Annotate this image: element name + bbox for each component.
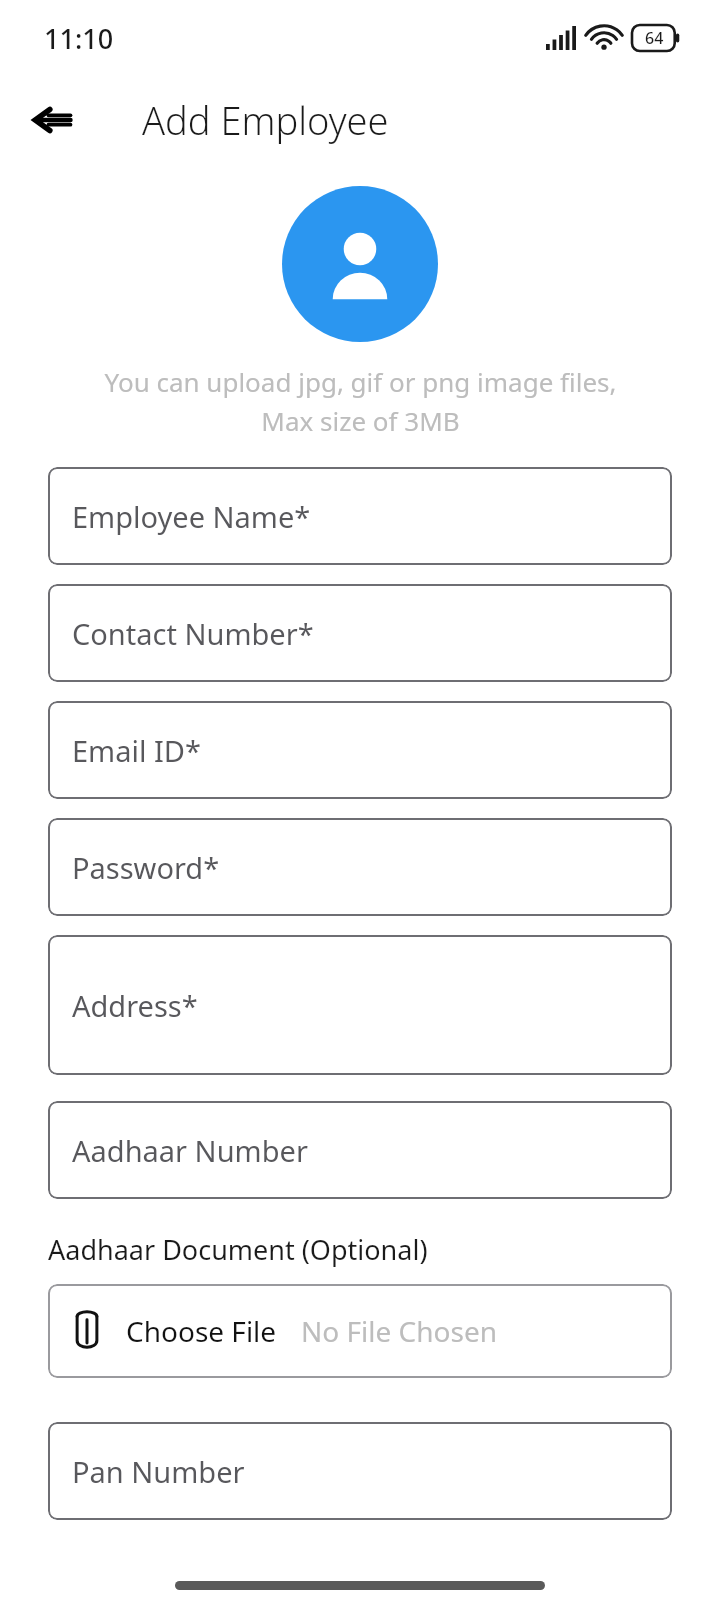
staticText: You can upload jpg, gif or png image fil… [104,364,617,439]
button[interactable]: Contact Number* [48,584,672,682]
button[interactable]: Password* [48,818,672,916]
staticText: Add Employee [142,94,389,146]
staticText: Contact Number* [72,614,314,653]
staticText: Email ID* [72,731,201,770]
staticText: 11:10 [44,20,114,57]
button[interactable]: Pan Number [48,1422,672,1520]
staticText: Address* [72,986,198,1025]
button[interactable]: Email ID* [48,701,672,799]
staticText: Pan Number [72,1452,245,1491]
staticText: No File Chosen [301,1312,498,1350]
staticText: Aadhaar Document (Optional) [48,1231,428,1268]
button[interactable]: Back [24,92,80,148]
button[interactable]: Choose File [48,1284,672,1378]
button[interactable]: Aadhaar Number [48,1101,672,1199]
staticText: 64 [645,27,664,49]
staticText: Choose File [126,1312,277,1350]
button[interactable]: Upload profile photo [282,186,438,342]
staticText: Aadhaar Number [72,1131,308,1170]
button[interactable]: Address* [48,935,672,1075]
staticText: Employee Name* [72,497,311,536]
staticText: Password* [72,848,220,887]
button[interactable]: Employee Name* [48,467,672,565]
